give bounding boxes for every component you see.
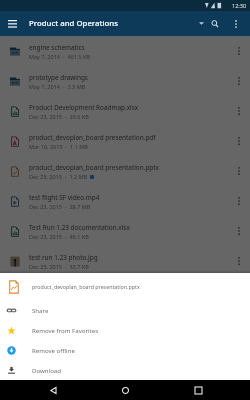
staticText: Dec 23, 2015 - 1.2 MB bbox=[29, 173, 88, 180]
staticText: Test Run 1.23 documentation.xlsx bbox=[29, 223, 130, 232]
button[interactable]: More options bbox=[228, 246, 250, 276]
staticText: engine schematics bbox=[29, 43, 85, 52]
button[interactable]: test run 1.23 photo.jpg bbox=[0, 246, 250, 276]
staticText: test run 1.23 photo.jpg bbox=[29, 253, 98, 262]
button[interactable]: engine schematics bbox=[0, 36, 250, 66]
staticText: Download bbox=[32, 366, 61, 374]
button[interactable]: Share bbox=[0, 300, 250, 320]
button[interactable]: Navigation menu bbox=[0, 11, 25, 36]
button[interactable]: More options bbox=[228, 216, 250, 246]
staticText: Dec 23, 2015 - 29.0 KB bbox=[29, 113, 89, 120]
staticText: product_devoplan_board presentation.pdf bbox=[29, 133, 156, 142]
staticText: Dec 23, 2015 - 46.1 KB bbox=[29, 233, 89, 240]
button[interactable]: Recent apps bbox=[178, 380, 218, 400]
button[interactable]: More options bbox=[228, 66, 250, 96]
staticText: Share bbox=[32, 306, 49, 314]
staticText: 12:30 bbox=[232, 2, 247, 9]
button[interactable]: product_devoplan_board presentation.pdf bbox=[0, 126, 250, 156]
button[interactable]: More options bbox=[228, 126, 250, 156]
button[interactable]: test flight SF video.mp4 bbox=[0, 186, 250, 216]
button[interactable]: Product Development Roadmap.xlsx bbox=[0, 96, 250, 126]
button[interactable]: product_devoplan_board presentation.pptx bbox=[0, 273, 250, 300]
button[interactable]: Remove from Favorites bbox=[0, 320, 250, 340]
button[interactable]: Test Run 1.23 documentation.xlsx bbox=[0, 216, 250, 246]
button[interactable]: More options bbox=[221, 11, 250, 36]
button[interactable]: Remove offline bbox=[0, 340, 250, 360]
staticText: Mar 16, 2015 - 1.1 MB bbox=[29, 143, 88, 150]
staticText: Remove offline bbox=[32, 346, 75, 354]
staticText: prototype drawings bbox=[29, 73, 88, 82]
staticText: Dec 23, 2015 - 28.7 MB bbox=[29, 203, 91, 210]
button[interactable]: Back bbox=[33, 380, 73, 400]
button[interactable]: More options bbox=[228, 96, 250, 126]
button[interactable]: prototype drawings bbox=[0, 66, 250, 96]
button[interactable]: Sort bbox=[194, 11, 208, 36]
staticText: Remove from Favorites bbox=[32, 326, 99, 334]
button[interactable]: Search bbox=[208, 11, 221, 36]
staticText: May 7, 2014 - 461.5 KB bbox=[29, 53, 90, 60]
staticText: test flight SF video.mp4 bbox=[29, 193, 100, 202]
staticText: product_devoplan_board presentation.pptx bbox=[29, 163, 159, 172]
button[interactable]: More options bbox=[228, 156, 250, 186]
staticText: Dec 23, 2015 - 53.7 KB bbox=[29, 263, 89, 270]
button[interactable]: Download bbox=[0, 360, 250, 380]
staticText: May 7, 2014 - 3.3 MB bbox=[29, 83, 86, 90]
staticText: Product Development Roadmap.xlsx bbox=[29, 103, 139, 112]
staticText: Product and Operations bbox=[29, 18, 118, 29]
button[interactable]: Home bbox=[105, 380, 145, 400]
button[interactable]: More options bbox=[228, 186, 250, 216]
button[interactable]: More options bbox=[228, 36, 250, 66]
button[interactable]: product_devoplan_board presentation.pptx bbox=[0, 156, 250, 186]
staticText: product_devoplan_board presentation.pptx bbox=[32, 283, 140, 290]
